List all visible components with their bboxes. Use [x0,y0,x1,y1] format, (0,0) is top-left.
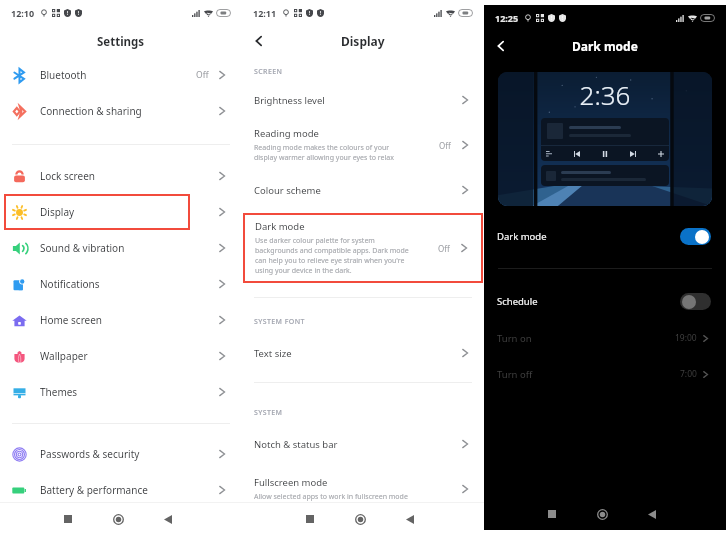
staticText: Off [438,243,450,254]
button[interactable]: Colour scheme [242,175,484,205]
staticText: Use darker colour palette for system bac… [255,236,409,276]
staticText: Wallpaper [40,349,88,363]
staticText: Dark mode [572,38,638,54]
button[interactable]: Recents [56,507,80,531]
staticText: Turn on [497,332,532,345]
staticText: Battery & performance [40,483,148,497]
button[interactable]: Recents [298,507,322,531]
staticText: Off [439,140,451,151]
button[interactable]: Notch & status bar [242,429,484,459]
button[interactable]: Dark mode [484,218,726,254]
button[interactable]: Dark mode [243,213,483,283]
button[interactable]: Home [106,507,130,531]
staticText: 7:00 [680,368,697,380]
button[interactable]: Reading mode [242,119,484,171]
staticText: Passwords & security [40,447,140,461]
button[interactable]: Home [348,507,372,531]
button[interactable]: Battery & performance [0,472,242,508]
staticText: Display [40,205,75,219]
button[interactable]: Schedule off [680,293,711,310]
staticText: Connection & sharing [40,104,142,118]
button[interactable]: Back [640,502,664,526]
staticText: SYSTEM [254,408,283,418]
button[interactable]: Home [590,502,614,526]
staticText: Dark mode [255,220,305,233]
button[interactable]: Back [398,507,422,531]
button[interactable]: Bluetooth [0,57,242,93]
staticText: Brightness level [254,94,325,107]
staticText: Notch & status bar [254,438,338,451]
button[interactable]: Wallpaper [0,338,242,374]
button[interactable]: Brightness level [242,85,484,115]
staticText: 12:10 [11,7,35,19]
staticText: Schedule [497,295,538,308]
staticText: Notifications [40,277,100,291]
button[interactable]: Text size [242,338,484,368]
button[interactable]: Back [484,31,518,61]
button[interactable]: Sound & vibration [0,230,242,266]
staticText: Home screen [40,313,103,327]
staticText: Themes [40,385,78,399]
button[interactable]: Dark mode on [680,228,711,245]
staticText: 12:11 [253,7,277,19]
staticText: Bluetooth [40,68,87,82]
button[interactable]: Display [0,194,242,230]
staticText: Settings [97,34,145,50]
staticText: Fullscreen mode [254,476,328,489]
staticText: SYSTEM FONT [254,317,305,327]
button[interactable]: Back [242,26,276,56]
button[interactable]: Notifications [0,266,242,302]
button[interactable]: Passwords & security [0,436,242,472]
button[interactable]: Back [156,507,180,531]
staticText: 2:36 [498,77,712,112]
staticText: Reading mode [254,127,319,140]
staticText: Dark mode [497,230,547,243]
staticText: Turn off [497,368,533,381]
button[interactable]: Fullscreen mode [242,468,484,510]
staticText: Off [196,69,209,81]
button[interactable]: Themes [0,374,242,410]
button[interactable]: Recents [540,502,564,526]
button[interactable]: Lock screen [0,158,242,194]
staticText: Reading mode makes the colours of your d… [254,143,394,163]
staticText: Colour scheme [254,184,321,197]
button[interactable]: Turn on [484,320,726,356]
button[interactable]: Schedule [484,283,726,319]
button[interactable]: Home screen [0,302,242,338]
button[interactable]: Connection & sharing [0,93,242,129]
staticText: Text size [254,347,292,360]
staticText: Allow selected apps to work in fullscree… [254,492,408,502]
button[interactable]: Turn off [484,356,726,392]
staticText: SCREEN [254,67,283,77]
staticText: Display [341,33,385,49]
staticText: Sound & vibration [40,241,125,255]
staticText: Lock screen [40,169,96,183]
staticText: 12:25 [495,12,519,24]
staticText: 19:00 [675,332,697,344]
